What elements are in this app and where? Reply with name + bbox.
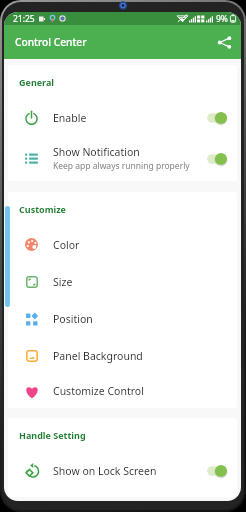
staticText: General: [19, 76, 55, 88]
staticText: Color: [53, 238, 80, 252]
button[interactable]: Size: [8, 263, 237, 300]
button[interactable]: Customize Control: [8, 374, 237, 408]
button[interactable]: Show on Lock Screen: [8, 452, 237, 489]
staticText: Size: [53, 275, 73, 289]
staticText: Customize Control: [53, 384, 144, 398]
staticText: Control Center: [15, 35, 87, 49]
staticText: 9%: [216, 13, 228, 25]
staticText: Show Notification: [53, 145, 140, 159]
staticText: 21:25: [13, 13, 35, 25]
staticText: Customize: [19, 203, 66, 215]
button[interactable]: Show Notification: [8, 136, 237, 181]
staticText: Keep app always running properly: [53, 160, 190, 172]
staticText: Enable: [53, 111, 87, 125]
staticText: Panel Background: [53, 349, 143, 363]
staticText: Handle Setting: [19, 429, 86, 441]
button[interactable]: Share: [213, 31, 235, 53]
button[interactable]: Panel Background: [8, 337, 237, 374]
button[interactable]: Color: [8, 226, 237, 263]
staticText: Position: [53, 312, 93, 326]
button[interactable]: Enable: [8, 99, 237, 136]
staticText: Show on Lock Screen: [53, 464, 157, 478]
button[interactable]: Position: [8, 300, 237, 337]
